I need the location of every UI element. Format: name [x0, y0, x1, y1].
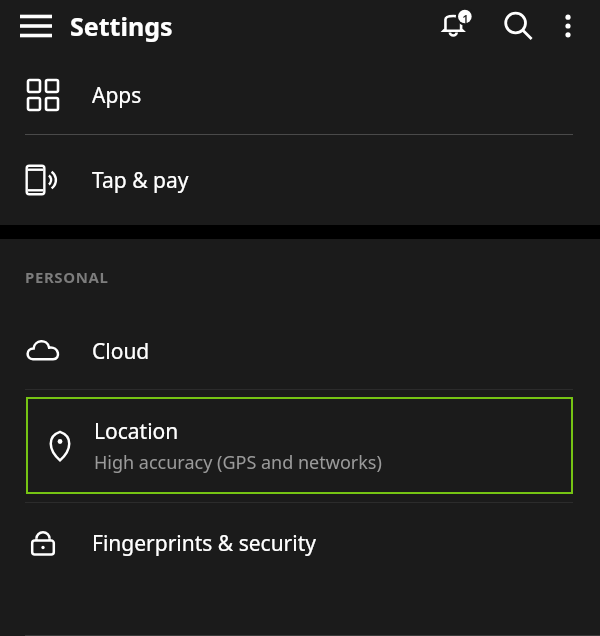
staticText: Tap & pay [92, 166, 189, 195]
button[interactable]: More options [544, 2, 592, 50]
button[interactable]: Open navigation menu [14, 4, 58, 48]
staticText: 1 [462, 11, 469, 26]
staticText: Location [94, 417, 179, 446]
button[interactable]: Fingerprints & security [0, 503, 600, 583]
button[interactable]: Search [492, 0, 544, 52]
staticText: High accuracy (GPS and networks) [94, 450, 382, 475]
button[interactable]: Cloud [0, 314, 600, 389]
staticText: Settings [70, 9, 173, 43]
button[interactable]: Apps [0, 56, 600, 134]
button[interactable]: Notifications, 1 new [430, 0, 482, 52]
staticText: Fingerprints & security [92, 529, 316, 558]
button[interactable]: Location [0, 390, 600, 502]
staticText: Cloud [92, 337, 150, 366]
staticText: PERSONAL [25, 267, 109, 287]
button[interactable]: Tap & pay [0, 135, 600, 225]
staticText: Apps [92, 81, 142, 110]
